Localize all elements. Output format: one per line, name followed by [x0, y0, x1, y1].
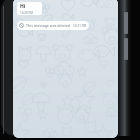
- button[interactable]: Hi: [17, 2, 42, 15]
- staticText: 14:31 PM: [73, 24, 87, 28]
- button[interactable]: Volume up: [124, 12, 128, 34]
- button[interactable]: Volume down: [124, 38, 128, 60]
- staticText: Hi: [20, 3, 26, 10]
- staticText: 14:30 PM: [20, 11, 33, 15]
- staticText: This message was deleted: [26, 23, 71, 28]
- button[interactable]: This message was deleted: [17, 21, 89, 30]
